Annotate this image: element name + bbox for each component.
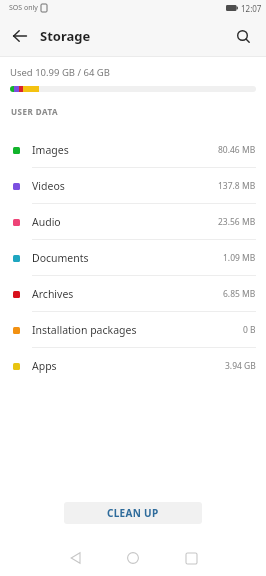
button[interactable]: Installation packages xyxy=(0,312,266,348)
staticText: Documents xyxy=(32,251,89,265)
staticText: USER DATA xyxy=(11,106,59,117)
staticText: 6.85 MB xyxy=(223,288,256,300)
button[interactable] xyxy=(111,540,155,576)
staticText: 0 B xyxy=(243,324,256,336)
button[interactable] xyxy=(0,16,40,56)
button[interactable] xyxy=(223,16,263,56)
staticText: Installation packages xyxy=(32,323,137,337)
button[interactable]: Images xyxy=(0,132,266,168)
button[interactable] xyxy=(169,540,213,576)
staticText: 1.09 MB xyxy=(223,252,256,264)
staticText: SOS only xyxy=(9,3,38,13)
staticText: Archives xyxy=(32,287,74,301)
staticText: 12:07 xyxy=(241,3,262,14)
staticText: 80.46 MB xyxy=(218,144,256,156)
staticText: 3.94 GB xyxy=(225,360,256,372)
staticText: Videos xyxy=(32,179,65,193)
staticText: Storage xyxy=(40,27,91,45)
staticText: Images xyxy=(32,143,69,157)
staticText: Audio xyxy=(32,215,61,229)
staticText: Used 10.99 GB / 64 GB xyxy=(10,66,110,79)
button[interactable]: Apps xyxy=(0,348,266,384)
staticText: CLEAN UP xyxy=(107,506,159,520)
button[interactable]: Archives xyxy=(0,276,266,312)
staticText: 137.8 MB xyxy=(218,180,256,192)
button[interactable]: Videos xyxy=(0,168,266,204)
button[interactable]: CLEAN UP xyxy=(64,502,202,524)
staticText: 23.56 MB xyxy=(218,216,256,228)
button[interactable]: Documents xyxy=(0,240,266,276)
staticText: Apps xyxy=(32,359,57,373)
button[interactable] xyxy=(53,540,97,576)
button[interactable]: Audio xyxy=(0,204,266,240)
